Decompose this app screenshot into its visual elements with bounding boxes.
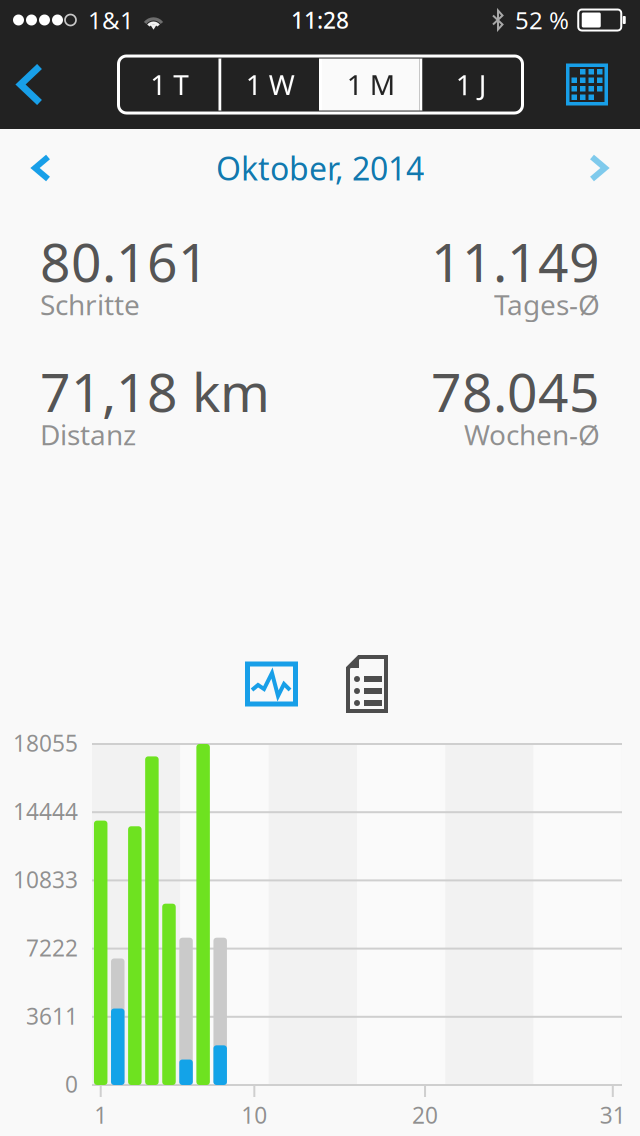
- button[interactable]: 1 J: [422, 58, 520, 110]
- staticText: 0: [65, 1069, 78, 1099]
- staticText: 10: [241, 1100, 267, 1130]
- staticText: 52 %: [515, 4, 569, 36]
- button[interactable]: 1 W: [221, 58, 319, 110]
- staticText: 1 T: [150, 66, 189, 103]
- button[interactable]: Calendar: [546, 39, 628, 129]
- button[interactable]: Next month: [557, 134, 640, 202]
- button[interactable]: Chart view: [245, 662, 298, 706]
- staticText: 7222: [26, 933, 78, 963]
- staticText: Distanz: [40, 416, 136, 453]
- button[interactable]: Back: [0, 40, 60, 129]
- staticText: Tages-Ø: [494, 286, 600, 323]
- staticText: 1&1: [88, 4, 134, 36]
- staticText: 11:28: [291, 5, 349, 35]
- staticText: 18055: [13, 728, 78, 758]
- staticText: 10833: [13, 864, 78, 894]
- staticText: 80.161: [40, 226, 209, 297]
- staticText: 20: [412, 1100, 438, 1130]
- staticText: 1 W: [246, 66, 295, 103]
- staticText: Wochen-Ø: [464, 416, 600, 453]
- staticText: 78.045: [431, 356, 600, 427]
- staticText: 31: [600, 1100, 626, 1130]
- staticText: 14444: [13, 796, 78, 826]
- button[interactable]: List view: [346, 655, 388, 713]
- staticText: 1 M: [347, 66, 395, 103]
- staticText: Oktober, 2014: [216, 147, 424, 189]
- staticText: 3611: [26, 1001, 78, 1031]
- staticText: 1: [94, 1100, 107, 1130]
- button[interactable]: 1 M: [322, 58, 419, 110]
- button[interactable]: Previous month: [0, 134, 83, 202]
- button[interactable]: 1 T: [121, 58, 218, 110]
- staticText: 71,18 km: [40, 356, 270, 427]
- staticText: Schritte: [40, 286, 140, 323]
- staticText: 11.149: [431, 226, 600, 297]
- staticText: 1 J: [456, 66, 487, 103]
